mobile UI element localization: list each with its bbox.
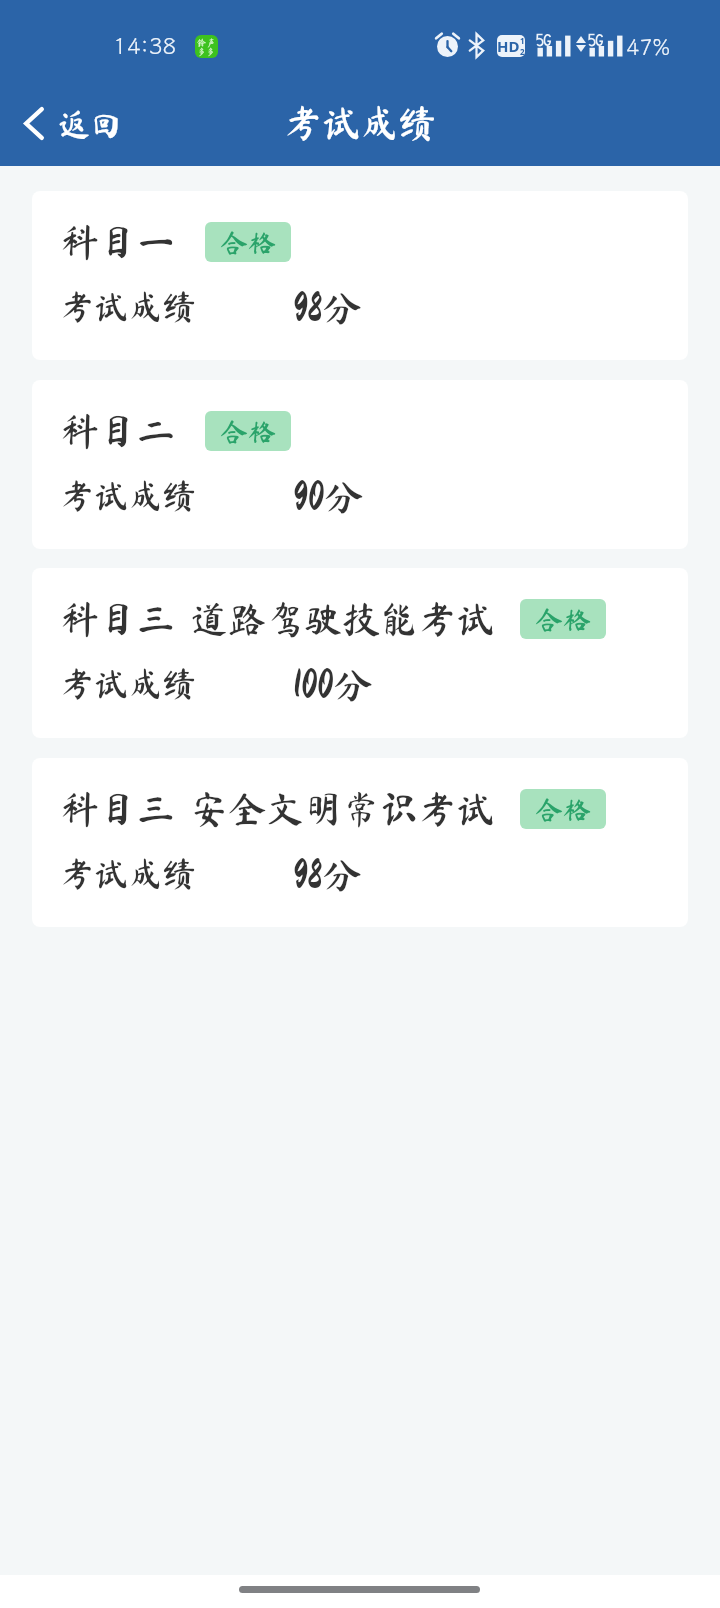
button[interactable]: 科目三 道路驾驶技能考试	[32, 568, 688, 738]
staticText: 1	[520, 35, 525, 46]
button[interactable]: 科目二	[32, 380, 688, 549]
staticText: HD	[497, 36, 520, 56]
button[interactable]: 科目一	[32, 191, 688, 360]
staticText: 2	[520, 46, 525, 57]
other: 返回	[24, 107, 44, 140]
button[interactable]: 返回	[0, 95, 137, 152]
button[interactable]: 科目三 安全文明常识考试	[32, 758, 688, 927]
staticText: 考试成绩	[60, 478, 196, 512]
staticText: 科目三 道路驾驶技能考试	[61, 600, 495, 638]
staticText: 考试成绩	[284, 104, 437, 142]
staticText: 多多	[197, 47, 216, 56]
staticText: 合格	[535, 605, 592, 633]
staticText: 98分	[293, 855, 363, 895]
staticText: 科目三 安全文明常识考试	[61, 790, 495, 828]
staticText: 98分	[293, 288, 363, 328]
staticText: 合格	[220, 228, 277, 256]
staticText: 47%	[626, 32, 671, 61]
staticText: 考试成绩	[60, 666, 196, 700]
staticText: 合格	[220, 417, 277, 445]
staticText: 100分	[293, 665, 374, 705]
staticText: 合格	[535, 795, 592, 823]
staticText: 科目一	[61, 223, 176, 261]
staticText: 考试成绩	[60, 856, 196, 890]
staticText: 14:38	[113, 30, 177, 60]
staticText: 考试成绩	[60, 289, 196, 323]
staticText: 铃声	[197, 38, 216, 47]
staticText: 90分	[293, 477, 364, 517]
staticText: 返回	[58, 108, 123, 140]
staticText: 科目二	[61, 412, 176, 450]
